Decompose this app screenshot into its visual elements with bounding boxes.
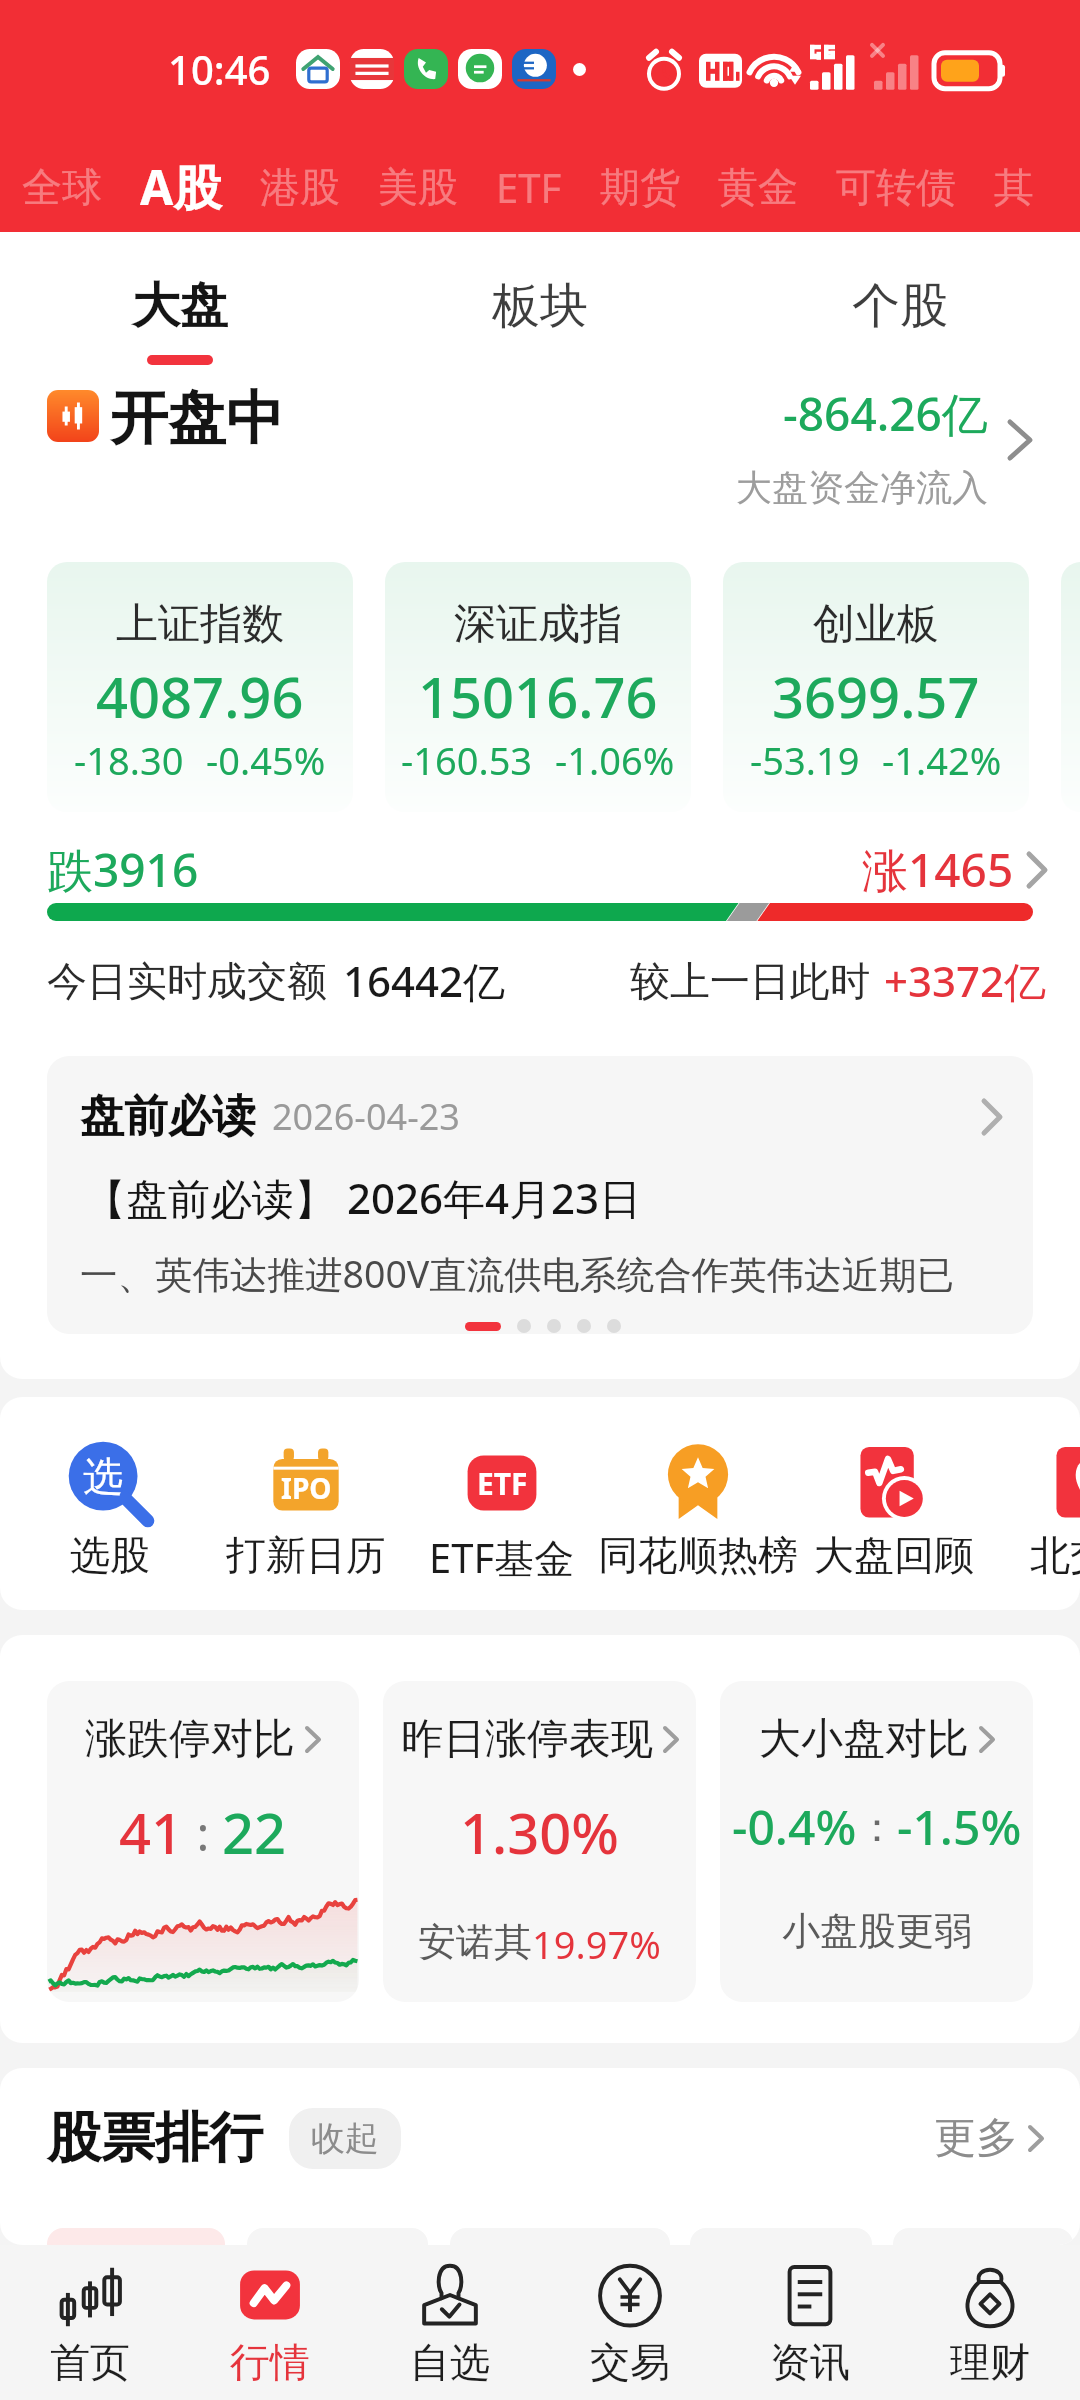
staticText: ETF <box>477 1463 528 1504</box>
button[interactable]: 选 <box>0 1440 240 1580</box>
staticText: 19.97% <box>532 1918 661 1970</box>
button[interactable]: 港股 <box>241 142 359 232</box>
button[interactable]: 可转债 <box>817 142 975 232</box>
staticText: 1.30% <box>460 1794 620 1870</box>
button[interactable]: 大盘回顾 <box>764 1440 1024 1580</box>
button[interactable]: 行情 <box>180 2245 360 2400</box>
button[interactable]: 其他 <box>975 142 1080 232</box>
staticText: 其他 <box>994 162 1061 212</box>
staticText: -1.06% <box>555 734 675 786</box>
staticText: 可转债 <box>836 162 956 212</box>
staticText: 较上一日此时 <box>630 956 870 1006</box>
staticText: 大盘资金净流入 <box>736 465 988 510</box>
staticText: 开盘中 <box>110 382 284 455</box>
staticText: 安诺其 <box>418 1918 532 1966</box>
button[interactable]: 同花顺热榜 <box>568 1440 828 1580</box>
staticText: 黄金 <box>718 162 798 212</box>
staticText: 收起 <box>311 2117 379 2160</box>
staticText: 盘前必读 <box>80 1089 256 1144</box>
button[interactable]: 盘前必读 <box>47 1056 1033 1334</box>
staticText: 15016.76 <box>418 658 658 734</box>
button[interactable]: ETF <box>372 1440 632 1585</box>
staticText: 大盘回顾 <box>814 1530 974 1580</box>
staticText: -1.5% <box>897 1794 1022 1859</box>
staticText: 2026-04-23 <box>272 1092 460 1141</box>
staticText: 北交所 <box>1030 1530 1080 1580</box>
button[interactable]: 黄金 <box>699 142 817 232</box>
staticText: 跌3916 <box>47 838 199 901</box>
staticText: 首页 <box>50 2337 130 2387</box>
staticText: 深证成指 <box>454 598 622 651</box>
button[interactable]: 自选 <box>360 2245 540 2400</box>
staticText: 股票排行 <box>47 2104 263 2172</box>
staticText: 板块 <box>492 276 588 336</box>
staticText: 【盘前必读】 2026年4月23日 <box>84 1169 642 1226</box>
staticText: 打新日历 <box>226 1530 386 1580</box>
staticText: 一、英伟达推进800V直流供电系统合作英伟达近期已向… <box>80 1248 1005 1299</box>
button[interactable]: IPO <box>176 1440 436 1580</box>
staticText: 4087.96 <box>96 658 304 734</box>
button[interactable]: 深证成指 <box>385 562 691 812</box>
staticText: ETF基金 <box>429 1530 575 1585</box>
staticText: 同花顺热榜 <box>598 1530 798 1580</box>
staticText: 涨跌停对比 <box>85 1713 295 1766</box>
staticText: 大小盘对比 <box>759 1713 969 1766</box>
button[interactable]: 期货 <box>581 142 699 232</box>
button[interactable]: 涨跌停对比 <box>47 1681 359 2002</box>
staticText: 港股 <box>260 162 340 212</box>
button[interactable]: 资讯 <box>720 2245 900 2400</box>
staticText: 今日实时成交额 <box>47 956 327 1006</box>
staticText: -0.4% <box>732 1794 857 1859</box>
button[interactable]: 个股 <box>720 276 1080 355</box>
staticText: ： <box>857 1802 897 1852</box>
staticText: 行情 <box>230 2337 310 2387</box>
button[interactable]: 收起 <box>289 2108 401 2169</box>
button[interactable]: 上证指数 <box>47 562 353 812</box>
staticText: 昨日涨停表现 <box>401 1713 653 1766</box>
button[interactable]: 板块 <box>360 276 720 355</box>
staticText: 更多 <box>934 2112 1018 2165</box>
button[interactable]: 大盘 <box>0 276 360 365</box>
button[interactable]: 首页 <box>0 2245 180 2400</box>
staticText: 个股 <box>852 276 948 336</box>
button[interactable]: 创业板 <box>723 562 1029 812</box>
staticText: 全球 <box>22 162 102 212</box>
staticText: 10:46 <box>168 42 271 96</box>
staticText: 选 <box>83 1451 123 1501</box>
button[interactable]: 更多 <box>934 2112 1044 2165</box>
button[interactable]: 理财 <box>900 2245 1080 2400</box>
staticText: -864.26亿 <box>783 382 988 445</box>
staticText: 大盘 <box>132 276 228 336</box>
staticText: -53.19 <box>750 734 860 786</box>
button[interactable]: 昨日涨停表现 <box>383 1681 696 2002</box>
staticText: IPO <box>281 1469 332 1507</box>
button[interactable]: ETF <box>477 142 581 232</box>
staticText: 期货 <box>600 162 680 212</box>
staticText: 自选 <box>410 2337 490 2387</box>
staticText: 上证指数 <box>116 598 284 651</box>
staticText: ETF <box>496 160 562 214</box>
button[interactable]: 全球 <box>3 142 121 232</box>
staticText: A股 <box>140 154 222 220</box>
staticText: : <box>184 1800 222 1865</box>
button[interactable]: 美股 <box>359 142 477 232</box>
staticText: 16442亿 <box>343 952 506 1009</box>
staticText: 小盘股更弱 <box>782 1907 972 1955</box>
staticText: 理财 <box>950 2337 1030 2387</box>
staticText: 41 <box>119 1794 184 1870</box>
staticText: 资讯 <box>770 2337 850 2387</box>
staticText: -18.30 <box>74 734 184 786</box>
staticText: +3372亿 <box>884 952 1047 1009</box>
staticText: 3699.57 <box>772 658 980 734</box>
staticText: 交易 <box>590 2337 670 2387</box>
staticText: 选股 <box>70 1530 150 1580</box>
button[interactable] <box>1061 562 1080 812</box>
staticText: -1.42% <box>882 734 1002 786</box>
staticText: 涨1465 <box>862 838 1014 901</box>
button[interactable]: 北交所 <box>960 1440 1080 1580</box>
staticText: -0.45% <box>206 734 326 786</box>
staticText: 创业板 <box>813 598 939 651</box>
button[interactable]: 交易 <box>540 2245 720 2400</box>
button[interactable]: A股 <box>121 142 241 232</box>
button[interactable]: 大小盘对比 <box>720 1681 1033 2002</box>
